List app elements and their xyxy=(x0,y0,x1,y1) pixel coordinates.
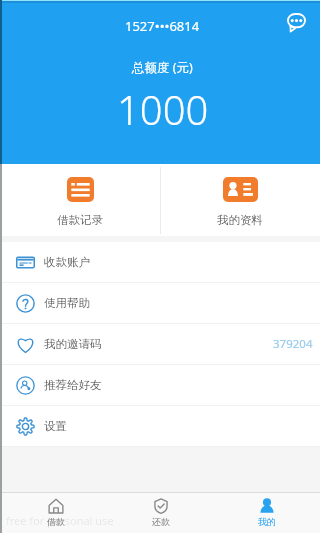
staticText: 我的资料 xyxy=(217,213,263,227)
staticText: 使用帮助 xyxy=(44,296,90,310)
button[interactable]: Messages xyxy=(283,9,309,35)
staticText: 总额度 (元) xyxy=(132,59,193,76)
button[interactable]: 设置 xyxy=(0,406,320,446)
staticText: 借款 xyxy=(47,516,65,527)
staticText: free for personal use xyxy=(6,513,114,528)
button[interactable]: 借款 xyxy=(3,493,108,533)
staticText: 还款 xyxy=(152,516,170,527)
staticText: 379204 xyxy=(273,336,313,352)
staticText: 设置 xyxy=(44,419,67,433)
button[interactable]: 借款记录 xyxy=(0,164,160,236)
staticText: 我的邀请码 xyxy=(44,337,102,351)
staticText: 推荐给好友 xyxy=(44,378,102,392)
button[interactable]: 我的邀请码 xyxy=(0,324,320,364)
button[interactable]: 收款账户 xyxy=(0,242,320,282)
staticText: 我的 xyxy=(258,516,276,527)
button[interactable]: 我的 xyxy=(214,493,320,533)
button[interactable]: 我的资料 xyxy=(160,164,320,236)
staticText: 收款账户 xyxy=(44,255,90,269)
button[interactable]: 使用帮助 xyxy=(0,283,320,323)
staticText: 借款记录 xyxy=(57,213,103,227)
button[interactable]: 还款 xyxy=(108,493,214,533)
staticText: 1527•••6814 xyxy=(125,17,200,35)
button[interactable]: 推荐给好友 xyxy=(0,365,320,405)
staticText: 1000 xyxy=(117,82,209,136)
